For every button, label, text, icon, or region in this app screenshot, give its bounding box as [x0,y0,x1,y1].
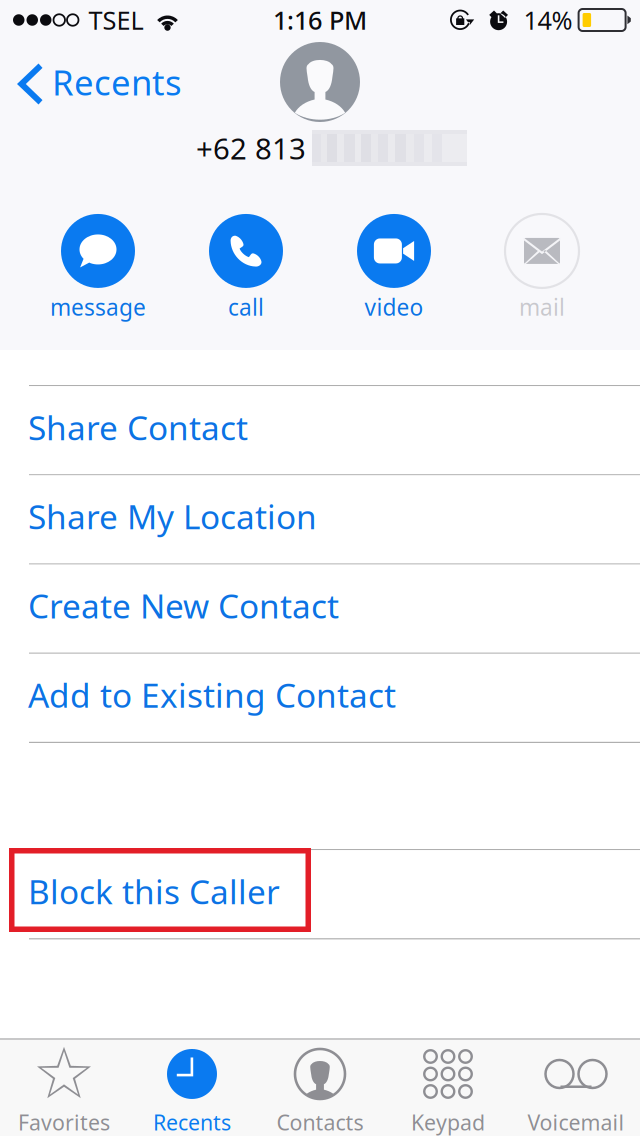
button[interactable]: Block this Caller [0,850,640,938]
button[interactable]: Share My Location [0,475,640,563]
staticText: message [50,292,146,322]
button[interactable]: Recents [128,1039,256,1136]
staticText: Contacts [276,1108,363,1136]
staticText: Recents [52,59,182,105]
staticText: mail [519,292,565,322]
staticText: +62 813 [196,128,306,167]
staticText: TSEL [88,3,143,37]
button[interactable]: Recents [0,40,182,116]
staticText: Share Contact [28,405,248,449]
button[interactable]: Share Contact [0,386,640,474]
button[interactable]: Create New Contact [0,565,640,653]
button[interactable]: call [172,216,320,328]
staticText: Recents [153,1108,231,1136]
button[interactable]: Keypad [384,1039,512,1136]
staticText: Add to Existing Contact [28,673,396,717]
staticText: Create New Contact [28,583,339,628]
staticText: 14% [524,3,573,37]
button[interactable]: Favorites [0,1039,128,1136]
staticText: Voicemail [527,1108,624,1136]
staticText: Block this Caller [28,869,280,913]
staticText: call [228,292,264,322]
button[interactable]: message [24,216,172,328]
staticText: Favorites [18,1108,110,1136]
staticText: Keypad [411,1108,485,1136]
button[interactable]: Contacts [256,1039,384,1136]
button[interactable]: video [320,216,468,328]
staticText: 1:16 PM [273,3,367,37]
staticText: Share My Location [28,494,317,539]
button[interactable]: mail [468,216,616,328]
button[interactable]: Voicemail [512,1039,640,1136]
button[interactable]: Add to Existing Contact [0,654,640,742]
staticText: video [364,292,423,322]
